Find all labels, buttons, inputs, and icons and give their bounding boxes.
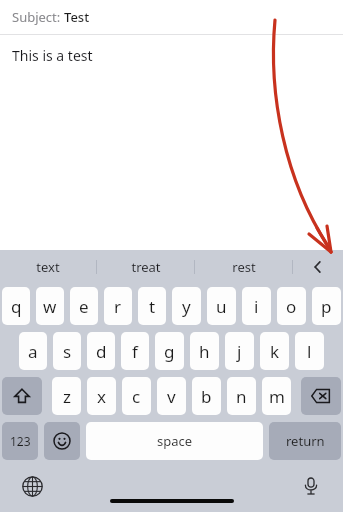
- button[interactable]: This is a test: [0, 35, 343, 250]
- button[interactable]: Dictate: [295, 470, 327, 502]
- button[interactable]: return: [269, 422, 341, 460]
- staticText: a: [28, 340, 38, 363]
- staticText: w: [43, 295, 57, 318]
- staticText: y: [182, 295, 191, 318]
- button[interactable]: treat: [97, 250, 194, 283]
- button[interactable]: l: [295, 332, 324, 370]
- button[interactable]: r: [104, 287, 132, 325]
- button[interactable]: m: [262, 377, 291, 415]
- staticText: v: [167, 385, 176, 408]
- staticText: space: [157, 432, 193, 450]
- button[interactable]: d: [87, 332, 115, 370]
- button[interactable]: 123: [2, 422, 38, 460]
- staticText: l: [307, 340, 312, 363]
- staticText: j: [237, 340, 242, 363]
- button[interactable]: i: [242, 287, 271, 325]
- button[interactable]: a: [19, 332, 47, 370]
- button[interactable]: b: [192, 377, 221, 415]
- button[interactable]: v: [157, 377, 186, 415]
- button[interactable]: g: [155, 332, 184, 370]
- staticText: Test: [64, 8, 90, 26]
- staticText: d: [96, 340, 107, 363]
- staticText: u: [216, 295, 227, 318]
- staticText: e: [79, 295, 89, 318]
- staticText: Subject:: [12, 8, 64, 26]
- staticText: x: [97, 385, 106, 408]
- button[interactable]: o: [277, 287, 306, 325]
- button[interactable]: j: [225, 332, 254, 370]
- staticText: o: [286, 295, 297, 318]
- button[interactable]: Previous suggestions: [293, 250, 343, 283]
- staticText: h: [199, 340, 210, 363]
- button[interactable]: Modifier key: [2, 377, 42, 415]
- staticText: f: [132, 340, 138, 363]
- button[interactable]: space: [86, 422, 263, 460]
- button[interactable]: f: [121, 332, 149, 370]
- button[interactable]: s: [53, 332, 81, 370]
- staticText: i: [254, 295, 259, 318]
- button[interactable]: p: [312, 287, 341, 325]
- button[interactable]: k: [260, 332, 289, 370]
- staticText: n: [236, 385, 247, 408]
- staticText: return: [286, 432, 325, 450]
- staticText: t: [149, 295, 156, 318]
- staticText: q: [11, 295, 22, 318]
- button[interactable]: Emoji: [44, 422, 80, 460]
- button[interactable]: w: [36, 287, 64, 325]
- button[interactable]: h: [190, 332, 219, 370]
- staticText: g: [164, 340, 175, 363]
- staticText: z: [63, 385, 71, 408]
- staticText: k: [270, 340, 280, 363]
- staticText: r: [114, 295, 122, 318]
- button[interactable]: Modifier key: [301, 377, 341, 415]
- staticText: c: [132, 385, 141, 408]
- button[interactable]: Change keyboard language: [16, 470, 48, 502]
- button[interactable]: e: [70, 287, 98, 325]
- staticText: s: [63, 340, 72, 363]
- staticText: 123: [10, 433, 31, 449]
- staticText: p: [321, 295, 332, 318]
- button[interactable]: rest: [195, 250, 292, 283]
- button[interactable]: t: [138, 287, 166, 325]
- staticText: treat: [131, 258, 161, 276]
- staticText: m: [269, 385, 285, 408]
- staticText: text: [36, 258, 60, 276]
- button[interactable]: y: [172, 287, 201, 325]
- staticText: This is a test: [12, 46, 93, 65]
- button[interactable]: c: [122, 377, 151, 415]
- staticText: b: [201, 385, 212, 408]
- button[interactable]: z: [52, 377, 81, 415]
- button[interactable]: u: [207, 287, 236, 325]
- button[interactable]: Subject:: [0, 0, 343, 34]
- staticText: rest: [232, 258, 256, 276]
- button[interactable]: q: [2, 287, 30, 325]
- button[interactable]: x: [87, 377, 116, 415]
- button[interactable]: text: [0, 250, 96, 283]
- button[interactable]: n: [227, 377, 256, 415]
